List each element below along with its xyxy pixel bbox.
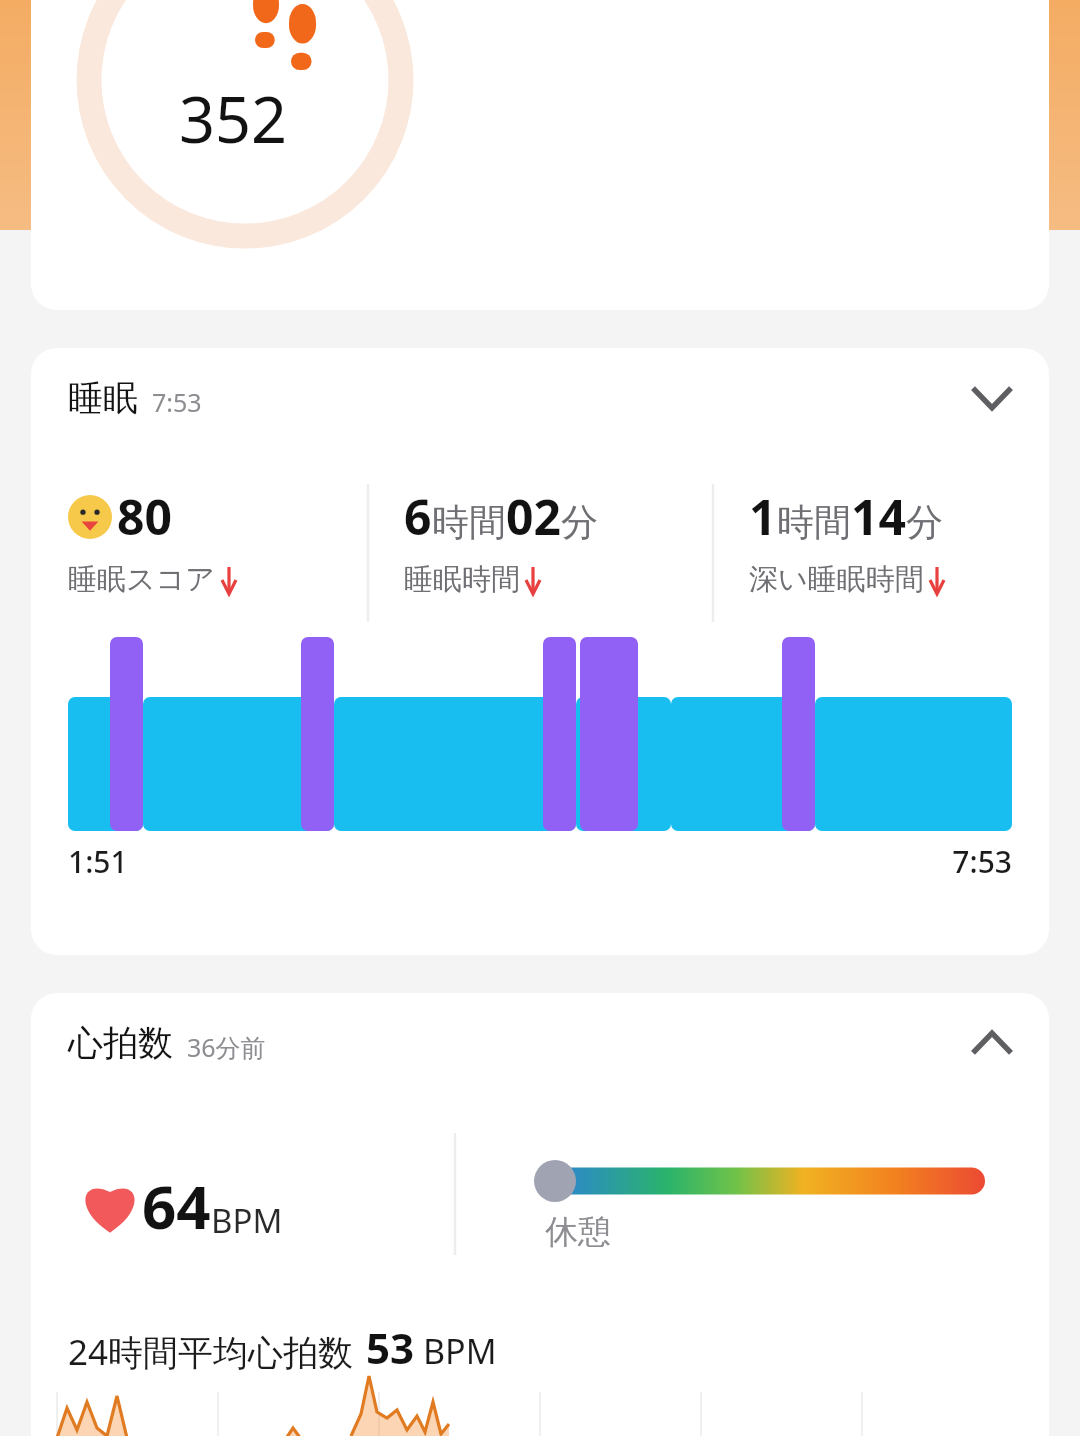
- staticText: 14: [851, 484, 906, 549]
- button[interactable]: 352: [31, 0, 1049, 310]
- staticText: 02: [506, 484, 561, 549]
- staticText: 352: [179, 76, 288, 162]
- staticText: 1: [749, 484, 777, 549]
- staticText: 分: [906, 499, 943, 546]
- staticText: 80: [117, 484, 172, 549]
- staticText: BPM: [423, 1328, 497, 1374]
- staticText: 深い睡眠時間: [749, 561, 924, 598]
- staticText: 53: [366, 1319, 415, 1376]
- staticText: 睡眠: [68, 376, 138, 420]
- staticText: 36分前: [187, 1030, 266, 1064]
- staticText: BPM: [211, 1198, 283, 1243]
- button[interactable]: 展開: [963, 369, 1021, 427]
- staticText: 1:51: [68, 841, 128, 882]
- button[interactable]: 心拍数: [31, 993, 1049, 1093]
- staticText: 時間: [777, 499, 851, 546]
- button[interactable]: 睡眠: [31, 348, 1049, 448]
- staticText: 24時間平均心拍数: [68, 1328, 354, 1376]
- staticText: 分: [561, 499, 598, 546]
- staticText: 心拍数: [68, 1021, 173, 1065]
- staticText: 睡眠スコア: [68, 561, 216, 598]
- staticText: 休憩: [545, 1211, 611, 1253]
- staticText: 睡眠時間: [404, 561, 520, 598]
- staticText: 64: [142, 1165, 211, 1247]
- staticText: 時間: [432, 499, 506, 546]
- staticText: 6: [404, 484, 432, 549]
- staticText: 7:53: [31, 841, 1012, 882]
- staticText: 7:53: [152, 385, 202, 419]
- button[interactable]: 折りたたむ: [963, 1014, 1021, 1072]
